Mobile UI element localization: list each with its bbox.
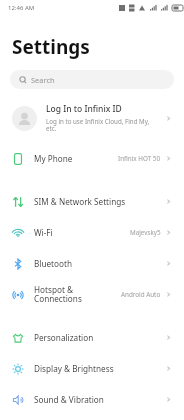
staticText: Personalization	[34, 332, 165, 343]
staticText: Infinix HOT 50	[118, 154, 161, 163]
staticText: Bluetooth	[34, 258, 165, 269]
button[interactable]: Log In to Infinix ID	[0, 97, 184, 139]
staticText: Log in to use Infinix Cloud, Find My, et…	[46, 117, 150, 133]
staticText: Majevsky5	[130, 228, 161, 237]
staticText: Search	[31, 75, 55, 85]
button[interactable]: Display & Brightness	[0, 353, 184, 384]
staticText: SIM & Network Settings	[34, 196, 165, 207]
staticText: Hotspot & Connections	[34, 284, 121, 305]
staticText: Settings	[12, 34, 90, 60]
staticText: Android Auto	[121, 290, 161, 299]
staticText: My Phone	[34, 153, 118, 164]
button[interactable]: Hotspot & Connections	[0, 279, 184, 310]
button[interactable]: Personalization	[0, 322, 184, 353]
staticText: Log In to Infinix ID	[46, 103, 122, 115]
button[interactable]: Bluetooth	[0, 248, 184, 279]
button[interactable]: SIM & Network Settings	[0, 186, 184, 217]
button[interactable]: Wi-Fi	[0, 217, 184, 248]
button[interactable]: My Phone	[0, 143, 184, 174]
staticText: Wi-Fi	[34, 227, 130, 238]
staticText: Display & Brightness	[34, 363, 165, 374]
button[interactable]: Sound & Vibration	[0, 384, 184, 415]
staticText: 12:46 AM	[8, 4, 35, 12]
staticText: Sound & Vibration	[34, 394, 165, 405]
button[interactable]: Search	[10, 70, 174, 89]
